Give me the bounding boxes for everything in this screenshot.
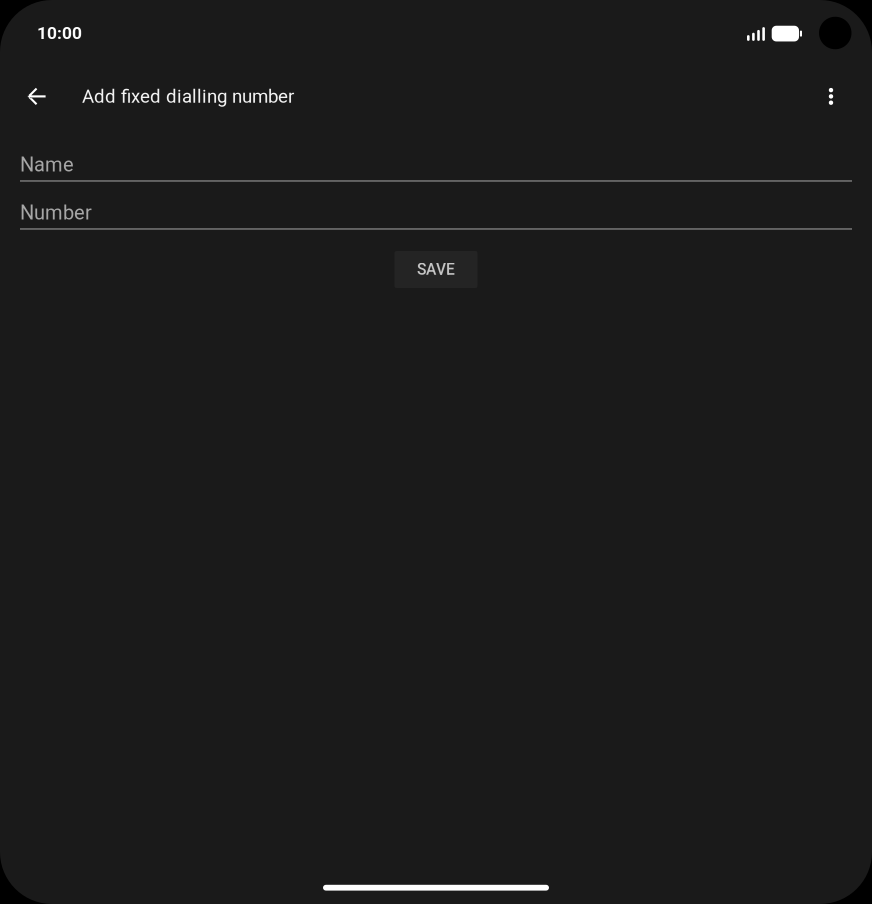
- button[interactable]: SAVE: [394, 251, 477, 288]
- staticText: Add fixed dialling number: [82, 85, 294, 107]
- staticText: 10:00: [37, 23, 82, 43]
- button[interactable]: Number: [20, 197, 852, 245]
- staticText: SAVE: [417, 260, 455, 279]
- button[interactable]: More options: [807, 72, 855, 120]
- staticText: Number: [20, 201, 92, 224]
- button[interactable]: Back: [13, 72, 61, 120]
- staticText: Name: [20, 153, 74, 176]
- button[interactable]: Name: [20, 149, 852, 197]
